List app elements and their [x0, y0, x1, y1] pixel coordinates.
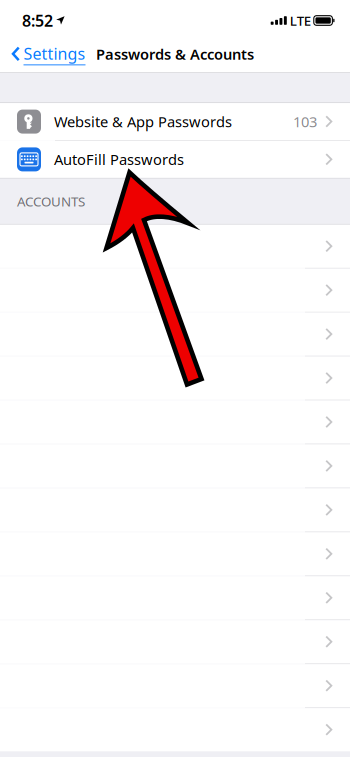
button[interactable]: Account — [0, 357, 350, 400]
staticText: AutoFill Passwords — [54, 150, 184, 169]
staticText: LTE — [290, 12, 311, 29]
staticText: ACCOUNTS — [17, 192, 85, 210]
button[interactable]: AutoFill Passwords — [0, 141, 350, 178]
staticText: 8:52 — [22, 10, 53, 31]
button[interactable]: Account — [0, 313, 350, 356]
staticText: Passwords & Accounts — [96, 44, 254, 64]
button[interactable]: Account — [0, 225, 350, 268]
staticText: Settings — [23, 43, 85, 64]
button[interactable]: Website & App Passwords — [0, 103, 350, 140]
button[interactable]: Account — [0, 269, 350, 312]
button[interactable]: Settings — [0, 36, 85, 72]
staticText: 103 — [293, 112, 317, 131]
staticText: Website & App Passwords — [54, 112, 232, 131]
